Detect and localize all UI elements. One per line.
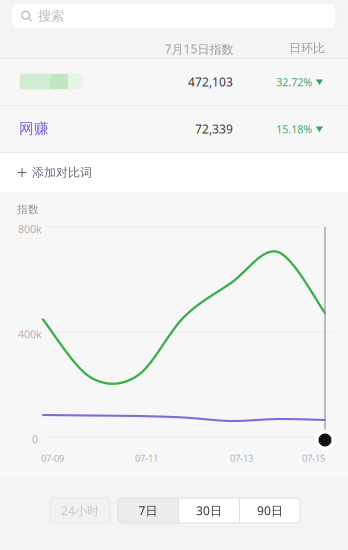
staticText: 30日 xyxy=(196,502,222,518)
staticText: 07-11 xyxy=(135,452,158,464)
button[interactable]: 7日 xyxy=(118,498,178,523)
staticText: 90日 xyxy=(257,502,283,518)
staticText: 400k xyxy=(18,327,42,341)
staticText: 日环比 xyxy=(289,41,325,56)
button[interactable]: 添加对比词 xyxy=(0,153,348,192)
button[interactable]: 24小时 xyxy=(50,498,110,523)
staticText: 800k xyxy=(18,222,42,236)
staticText: 24小时 xyxy=(61,502,99,518)
staticText: 472,103 xyxy=(188,74,233,90)
staticText: 添加对比词 xyxy=(32,165,92,180)
staticText: 07-15 xyxy=(302,452,325,464)
staticText: 32.72% xyxy=(276,75,312,89)
staticText: 7月15日指数 xyxy=(164,41,233,57)
staticText: 7日 xyxy=(138,502,157,518)
staticText: 07-09 xyxy=(41,452,64,464)
button[interactable]: 搜索 xyxy=(11,3,336,29)
button[interactable]: 472,103 xyxy=(0,59,348,106)
staticText: 网赚 xyxy=(19,119,49,137)
button[interactable]: 90日 xyxy=(240,498,300,523)
staticText: 指数 xyxy=(17,203,39,216)
staticText: 15.18% xyxy=(276,122,312,136)
staticText: 0 xyxy=(32,432,38,446)
staticText: 72,339 xyxy=(195,121,233,137)
staticText: 搜索 xyxy=(38,8,64,24)
button[interactable]: 30日 xyxy=(179,498,239,523)
staticText: 07-13 xyxy=(230,452,253,464)
button[interactable]: 网赚 xyxy=(0,106,348,153)
